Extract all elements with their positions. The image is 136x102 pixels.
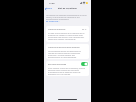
- other: Recharge optimisée de la batterie: [81, 62, 88, 66]
- staticText: Pour réduire l'usure de la batterie, iPh…: [48, 67, 87, 75]
- staticText: La batterie se dégrade naturellement au …: [46, 14, 87, 20]
- staticText: 11:30: [49, 2, 55, 5]
- button[interactable]: Back: [45, 7, 53, 10]
- staticText: État de la batterie: [58, 7, 77, 10]
- staticText: Recharge optimisée: [48, 63, 67, 66]
- button[interactable]: En savoir plus…: [46, 20, 60, 23]
- staticText: Il s'agit d'une mesure de la capacité de…: [48, 32, 87, 40]
- staticText: 89 %: [82, 28, 87, 31]
- staticText: Capacité maximale: [48, 28, 66, 31]
- staticText: Capacité de performance optimale: [48, 46, 80, 49]
- button[interactable]: Recharge optimisée: [48, 62, 87, 66]
- staticText: Retour: [46, 7, 53, 10]
- staticText: Votre batterie prend actuellement en cha…: [48, 50, 87, 58]
